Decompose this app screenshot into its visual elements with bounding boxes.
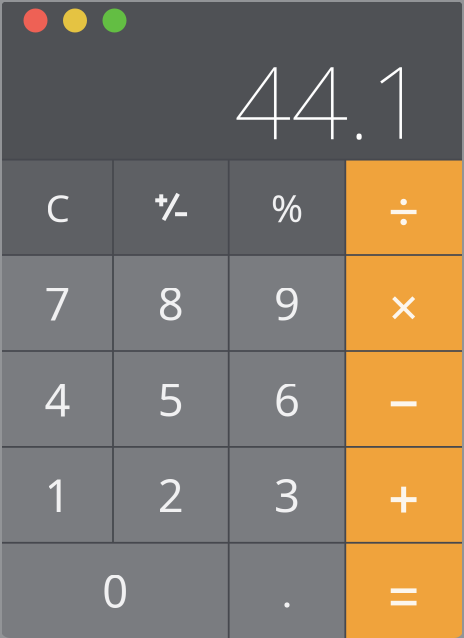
button[interactable]: 9 xyxy=(229,255,345,351)
button[interactable]: 2 xyxy=(113,447,229,543)
button[interactable]: Decimal point xyxy=(229,543,345,638)
staticText: 9 xyxy=(274,273,300,333)
button[interactable]: 6 xyxy=(229,351,345,447)
button[interactable]: 4 xyxy=(2,351,113,447)
button[interactable]: 1 xyxy=(2,447,113,543)
button[interactable]: C xyxy=(2,160,113,255)
staticText: 1 xyxy=(44,465,70,525)
button[interactable]: Close xyxy=(23,8,47,32)
button[interactable]: 8 xyxy=(113,255,229,351)
button[interactable]: Multiply xyxy=(345,255,462,351)
staticText: 5 xyxy=(158,369,184,429)
staticText: 44.1 xyxy=(234,34,427,166)
staticText: C xyxy=(45,182,69,233)
button[interactable]: Add xyxy=(345,447,462,543)
staticText: 0 xyxy=(102,560,128,620)
button[interactable]: 0 xyxy=(2,543,229,638)
staticText: 8 xyxy=(158,273,184,333)
button[interactable]: Subtract xyxy=(345,351,462,447)
staticText: 6 xyxy=(274,369,300,429)
staticText: 3 xyxy=(274,465,300,525)
staticText: 4 xyxy=(44,369,70,429)
button[interactable]: Plus or minus xyxy=(113,159,229,255)
button[interactable]: Zoom xyxy=(102,8,126,32)
staticText: % xyxy=(271,182,303,233)
staticText: 7 xyxy=(44,273,70,333)
button[interactable]: 5 xyxy=(113,351,229,447)
button[interactable]: 7 xyxy=(2,255,113,351)
button[interactable]: Equals xyxy=(345,543,462,638)
staticText: 2 xyxy=(158,465,184,525)
button[interactable]: 3 xyxy=(229,447,345,543)
button[interactable]: % xyxy=(229,160,345,255)
button[interactable]: Minimize xyxy=(63,8,87,32)
button[interactable]: Divide xyxy=(345,160,462,255)
